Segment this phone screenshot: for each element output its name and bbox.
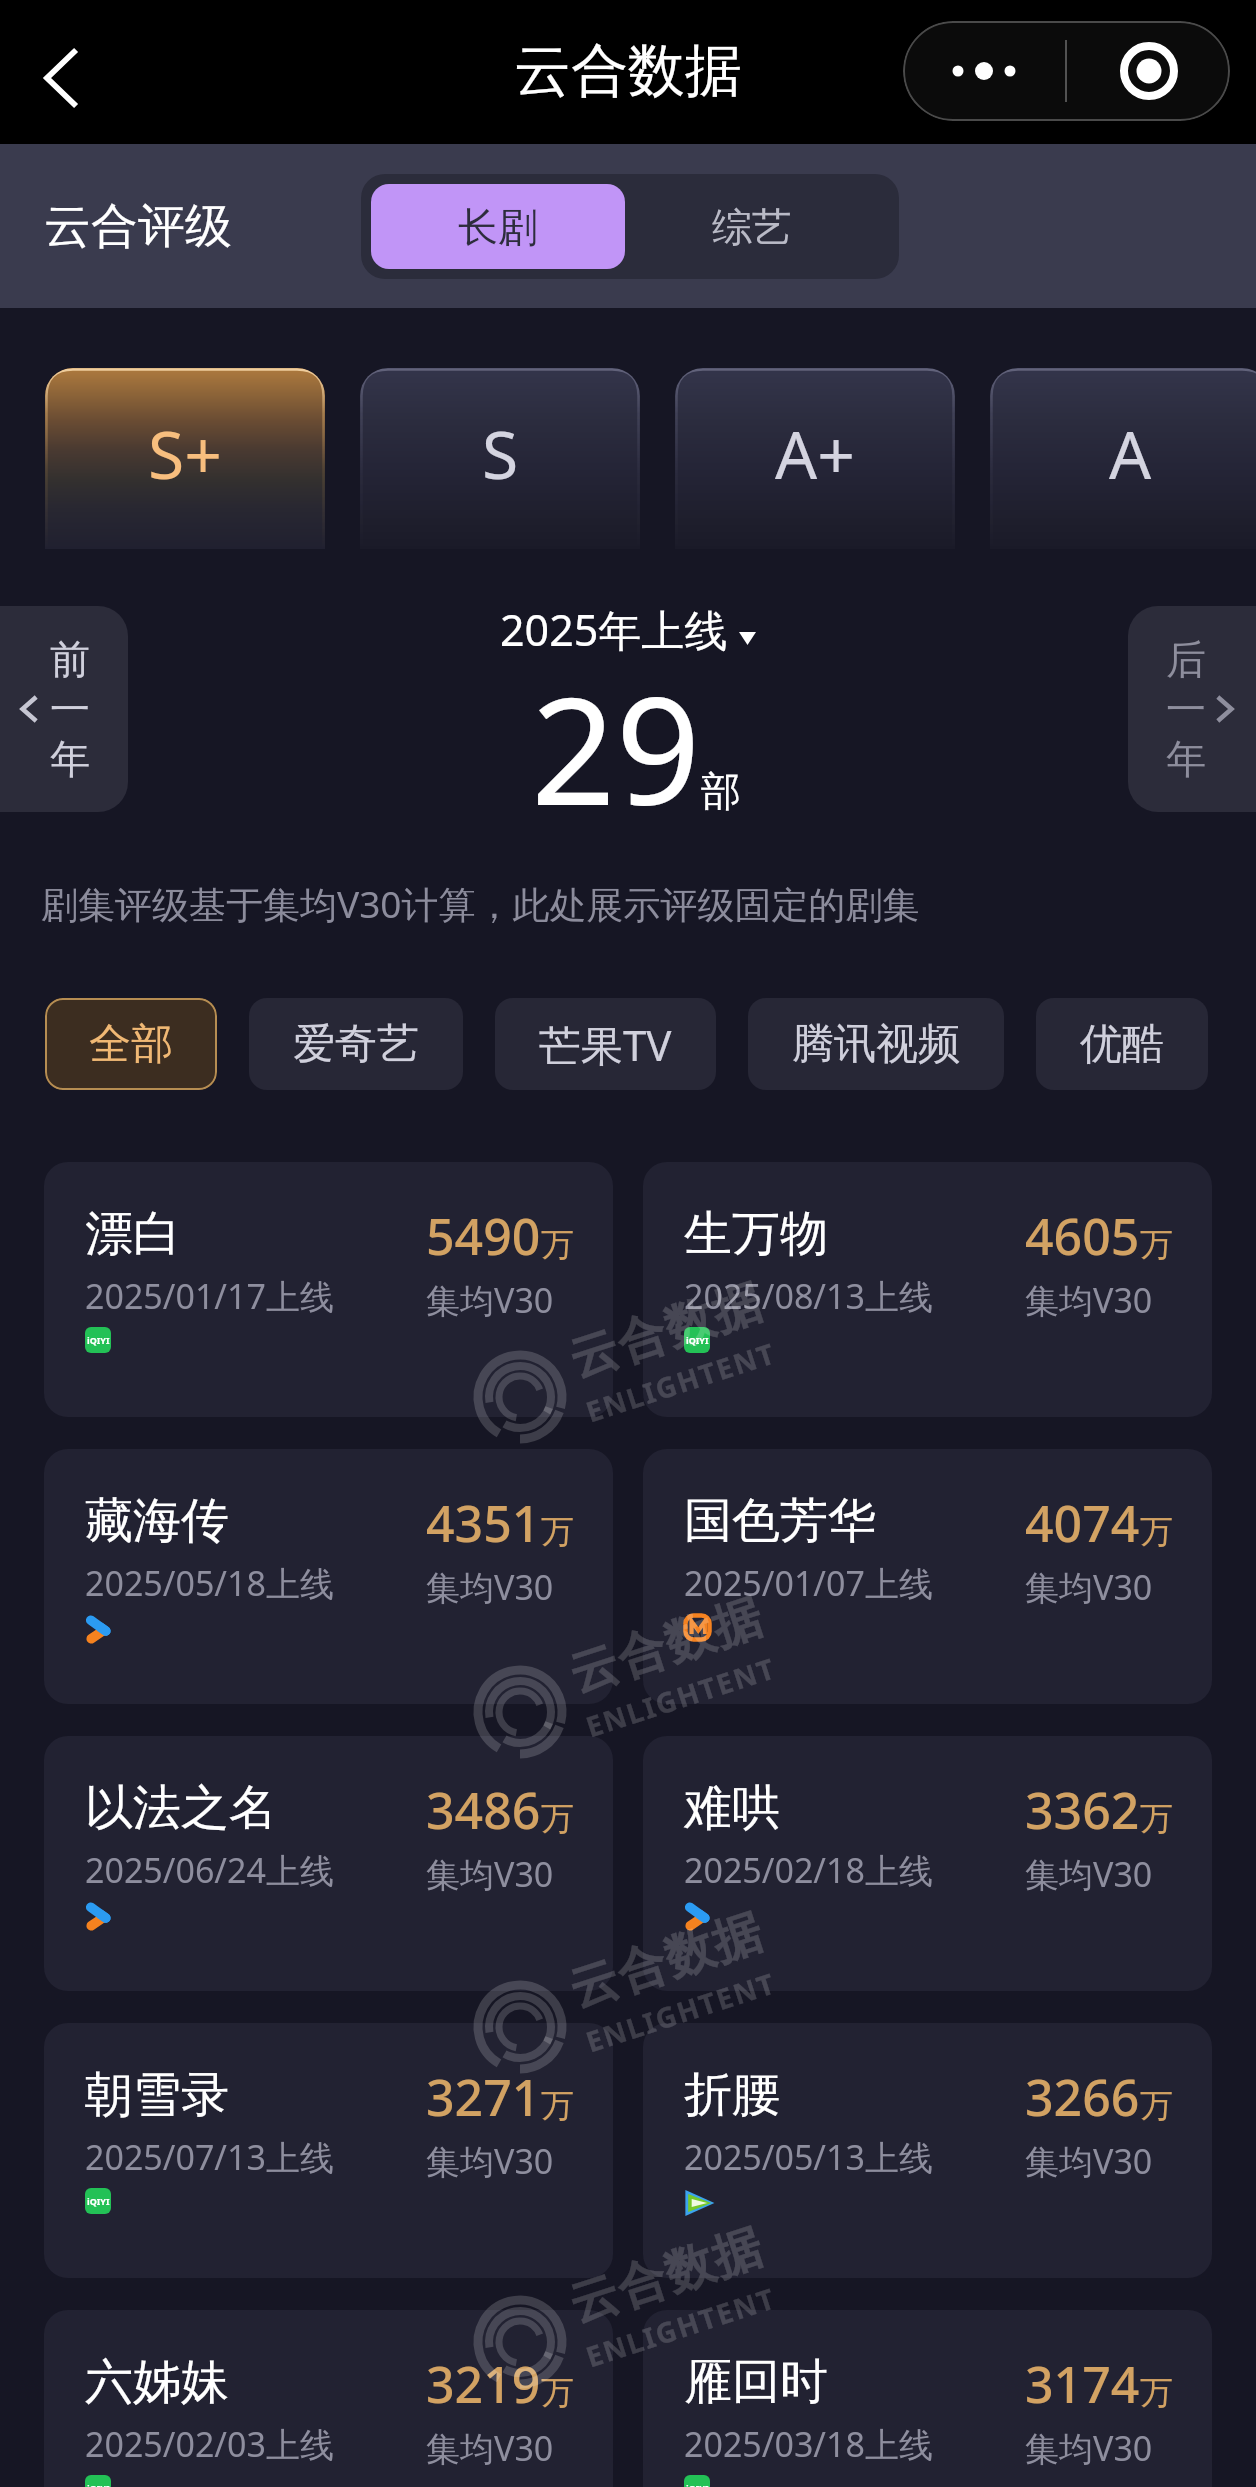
button[interactable]: 爱奇艺	[249, 998, 463, 1090]
staticText: 万	[541, 1511, 574, 1553]
button[interactable]: 优酷	[1036, 998, 1208, 1090]
staticText: 4074	[1025, 1489, 1140, 1557]
button[interactable]: 生万物	[643, 1162, 1212, 1417]
button[interactable]: 藏海传	[44, 1449, 613, 1704]
button[interactable]: Close	[1067, 21, 1230, 121]
staticText: ENLIGHTENT	[581, 2278, 781, 2375]
staticText: 集均V30	[426, 1564, 554, 1610]
staticText: 4351	[426, 1489, 541, 1557]
staticText: 集均V30	[426, 1851, 554, 1897]
staticText: 爱奇艺	[293, 1018, 419, 1071]
button[interactable]: 朝雪录	[44, 2023, 613, 2278]
staticText: iQIYI	[686, 2482, 709, 2487]
button[interactable]: 腾讯视频	[748, 998, 1004, 1090]
staticText: 生万物	[684, 1204, 828, 1264]
staticText: ENLIGHTENT	[581, 1963, 781, 2060]
button[interactable]: 后	[1128, 606, 1256, 812]
staticText: S	[482, 408, 519, 498]
button[interactable]: 综艺	[625, 184, 879, 269]
staticText: 4605	[1025, 1202, 1140, 1270]
staticText: iQIYI	[87, 2195, 110, 2207]
staticText: 万	[1140, 1224, 1173, 1266]
button[interactable]: 芒果TV	[495, 998, 716, 1090]
staticText: 全部	[89, 1018, 173, 1071]
button[interactable]: 难哄	[643, 1736, 1212, 1991]
staticText: 2025/01/07上线	[684, 1560, 933, 1606]
staticText: 藏海传	[85, 1491, 229, 1551]
staticText: 万	[541, 2085, 574, 2127]
staticText: 万	[541, 2372, 574, 2414]
staticText: 集均V30	[426, 2425, 554, 2471]
staticText: 3362	[1025, 1776, 1140, 1844]
staticText: 朝雪录	[85, 2065, 229, 2125]
staticText: 部	[701, 766, 741, 816]
staticText: 云合数据	[561, 2217, 770, 2335]
staticText: 综艺	[712, 202, 792, 252]
staticText: 万	[1140, 1511, 1173, 1553]
button[interactable]: 以法之名	[44, 1736, 613, 1991]
staticText: ENLIGHTENT	[581, 1648, 781, 1745]
staticText: 5490	[426, 1202, 541, 1270]
button[interactable]: S	[360, 368, 640, 549]
staticText: 2025/07/13上线	[85, 2134, 334, 2180]
staticText: 万	[541, 1224, 574, 1266]
staticText: iQIYI	[87, 1334, 110, 1346]
staticText: A+	[775, 408, 855, 498]
button[interactable]: 折腰	[643, 2023, 1212, 2278]
staticText: iQIYI	[87, 2482, 110, 2487]
staticText: 后	[1166, 634, 1206, 684]
staticText: 折腰	[684, 2065, 780, 2125]
staticText: 难哄	[684, 1778, 780, 1838]
staticText: 万	[1140, 2085, 1173, 2127]
staticText: 2025/05/18上线	[85, 1560, 334, 1606]
staticText: 前	[50, 634, 90, 684]
button[interactable]: Back	[18, 36, 102, 120]
button[interactable]: 漂白	[44, 1162, 613, 1417]
staticText: 3486	[426, 1776, 541, 1844]
staticText: 优酷	[1080, 1018, 1164, 1071]
button[interactable]: 前	[0, 606, 128, 812]
staticText: 2025/08/13上线	[684, 1273, 933, 1319]
staticText: S+	[148, 408, 222, 498]
button[interactable]: 六姊妹	[44, 2310, 613, 2487]
button[interactable]: 雁回时	[643, 2310, 1212, 2487]
button[interactable]: More options	[903, 21, 1065, 121]
staticText: 2025/05/13上线	[684, 2134, 933, 2180]
button[interactable]: A	[990, 368, 1256, 549]
staticText: 腾讯视频	[792, 1018, 960, 1071]
staticText: 3174	[1025, 2350, 1140, 2418]
staticText: 集均V30	[1025, 2425, 1153, 2471]
staticText: 2025/02/03上线	[85, 2421, 334, 2467]
staticText: 云合评级	[44, 197, 232, 256]
staticText: iQIYI	[686, 1334, 709, 1346]
staticText: 3266	[1025, 2063, 1140, 2131]
button[interactable]: 2025年上线	[500, 600, 756, 659]
staticText: 长剧	[458, 202, 538, 252]
staticText: 国色芳华	[684, 1491, 876, 1551]
button[interactable]: 全部	[45, 998, 217, 1090]
staticText: 29	[531, 647, 701, 816]
staticText: 一	[50, 684, 90, 734]
staticText: 漂白	[85, 1204, 181, 1264]
staticText: 以法之名	[85, 1778, 277, 1838]
staticText: 芒果TV	[539, 1016, 672, 1073]
staticText: 云合数据	[561, 1272, 770, 1390]
staticText: 云合数据	[514, 35, 742, 107]
button[interactable]: S+	[45, 368, 325, 549]
button[interactable]: 国色芳华	[643, 1449, 1212, 1704]
button[interactable]: A+	[675, 368, 955, 549]
staticText: 一	[1166, 684, 1206, 734]
staticText: 3219	[426, 2350, 541, 2418]
button[interactable]: 长剧	[371, 184, 625, 269]
staticText: 3271	[426, 2063, 541, 2131]
staticText: 剧集评级基于集均V30计算，此处展示评级固定的剧集	[41, 878, 920, 929]
staticText: 云合数据	[561, 1587, 770, 1705]
staticText: 万	[1140, 2372, 1173, 2414]
staticText: 集均V30	[1025, 1564, 1153, 1610]
staticText: 2025/06/24上线	[85, 1847, 334, 1893]
staticText: ENLIGHTENT	[581, 1333, 781, 1430]
staticText: A	[1109, 408, 1152, 498]
staticText: 雁回时	[684, 2352, 828, 2412]
staticText: 集均V30	[1025, 1851, 1153, 1897]
staticText: 集均V30	[426, 1277, 554, 1323]
